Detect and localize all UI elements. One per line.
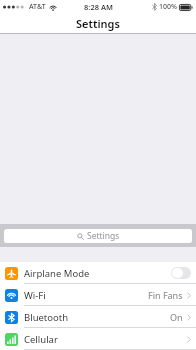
- staticText: Fin Fans: [148, 289, 183, 301]
- button[interactable]: Airplane Mode: [0, 262, 196, 284]
- button[interactable]: Settings: [4, 229, 192, 243]
- button[interactable]: Cellular: [0, 328, 196, 350]
- button[interactable]: Wi-Fi: [0, 284, 196, 306]
- staticText: 8:28 AM: [84, 2, 113, 12]
- staticText: Airplane Mode: [24, 267, 90, 280]
- staticText: Wi-Fi: [24, 289, 46, 302]
- staticText: 100%: [159, 2, 177, 12]
- staticText: On: [170, 311, 183, 323]
- button[interactable]: Bluetooth: [0, 306, 196, 328]
- button[interactable]: Airplane Mode switch, off: [171, 267, 191, 279]
- staticText: Cellular: [24, 333, 58, 346]
- staticText: AT&T: [29, 2, 46, 12]
- staticText: Bluetooth: [24, 311, 69, 324]
- staticText: Settings: [87, 230, 120, 242]
- staticText: Settings: [76, 16, 120, 31]
